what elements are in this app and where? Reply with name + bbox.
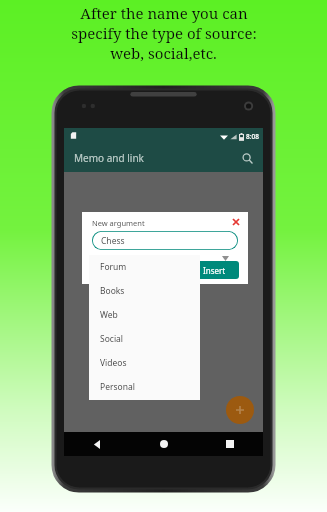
button[interactable]: Back	[64, 432, 131, 456]
button[interactable]: Personal	[89, 375, 200, 399]
staticText: Insert	[203, 265, 226, 276]
button[interactable]: Chess	[92, 231, 238, 250]
staticText: specify the type of source:	[71, 23, 257, 43]
staticText: Books	[100, 285, 125, 297]
staticText: Forum	[100, 261, 127, 273]
staticText: After the name you can	[80, 3, 248, 23]
button[interactable]: Insert	[190, 261, 239, 279]
button[interactable]: Close	[230, 216, 242, 228]
button[interactable]: Add	[226, 396, 254, 424]
staticText: Web	[100, 309, 118, 321]
staticText: Personal	[100, 381, 135, 393]
button[interactable]: Social	[89, 327, 200, 351]
button[interactable]: Recents	[197, 432, 263, 456]
button[interactable]: Forum	[89, 255, 200, 279]
button[interactable]: Search	[238, 149, 256, 167]
staticText: 8:08	[246, 132, 259, 141]
staticText: Videos	[100, 357, 127, 369]
staticText: Chess	[101, 235, 125, 247]
button[interactable]: Web	[89, 303, 200, 327]
staticText: Memo and link	[74, 151, 144, 165]
button[interactable]: Videos	[89, 351, 200, 375]
staticText: web, social,etc.	[110, 43, 217, 63]
button[interactable]: Home	[131, 432, 197, 456]
button[interactable]: Books	[89, 279, 200, 303]
staticText: Social	[100, 333, 124, 345]
staticText: New argument	[92, 218, 145, 228]
